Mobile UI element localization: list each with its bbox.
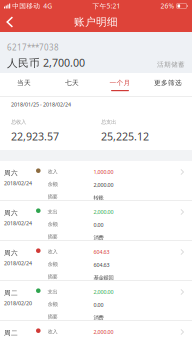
button[interactable]: 周六 — [0, 201, 192, 241]
staticText: 总支出 — [101, 119, 116, 125]
staticText: 余额 — [48, 261, 58, 267]
staticText: 2,000.00 — [94, 181, 114, 189]
button[interactable]: 一个月 — [96, 73, 144, 97]
staticText: 2018/02/24 — [4, 220, 32, 227]
staticText: 6217***7038 — [7, 42, 59, 53]
button[interactable]: 周六 — [0, 241, 192, 281]
button[interactable]: 七天 — [48, 73, 96, 97]
staticText: 2018/02/20 — [4, 300, 32, 307]
staticText: 25,225.12 — [101, 129, 149, 143]
staticText: 一个月 — [109, 79, 130, 87]
button[interactable]: 周六 — [0, 161, 192, 201]
staticText: 余额 — [48, 221, 58, 227]
staticText: 摘要 — [48, 313, 58, 320]
staticText: 2018/02/24 — [4, 260, 32, 267]
staticText: 收入 — [48, 248, 58, 255]
button[interactable]: 周二 — [0, 321, 192, 341]
staticText: 七天 — [65, 79, 79, 87]
staticText: 当天 — [17, 79, 31, 87]
staticText: 2018/01/25 - 2018/02/24 — [11, 101, 71, 108]
button[interactable]: 返回 — [0, 12, 23, 32]
staticText: 基金赎回 — [94, 275, 114, 281]
staticText: 2018/02/24 — [4, 180, 32, 187]
staticText: 2,000.00 — [94, 208, 114, 215]
staticText: 0.00 — [94, 301, 104, 309]
staticText: 摘要 — [48, 193, 58, 200]
staticText: 周二 — [4, 329, 18, 337]
staticText: 消费 — [94, 235, 104, 241]
staticText: 周六 — [4, 249, 18, 257]
button[interactable]: 当天 — [0, 73, 48, 97]
staticText: 1,000.00 — [94, 168, 114, 175]
staticText: 活期储蓄 — [157, 60, 185, 69]
staticText: 转账 — [94, 195, 104, 201]
staticText: 604.63 — [94, 261, 110, 269]
staticText: 周六 — [4, 169, 18, 177]
staticText: 消费 — [94, 315, 104, 321]
staticText: 2,000.00 — [94, 288, 114, 295]
staticText: 支出 — [48, 288, 58, 295]
staticText: 中国移动 — [12, 2, 40, 10]
button[interactable]: 周二 — [0, 281, 192, 321]
staticText: 周二 — [4, 289, 18, 297]
staticText: 总收入 — [11, 119, 26, 125]
staticText: 摘要 — [48, 233, 58, 240]
staticText: 更多筛选 — [154, 79, 182, 87]
staticText: 收入 — [48, 168, 58, 175]
staticText: 4G — [43, 2, 52, 10]
button[interactable]: 更多筛选 — [144, 73, 192, 97]
staticText: 余额 — [48, 181, 58, 187]
staticText: 0.00 — [94, 221, 104, 229]
staticText: 摘要 — [48, 273, 58, 280]
staticText: 周六 — [4, 209, 18, 217]
staticText: 支出 — [48, 208, 58, 215]
staticText: 26% — [161, 2, 175, 10]
staticText: 下午5:21 — [92, 2, 120, 10]
staticText: 22,923.57 — [11, 129, 59, 143]
staticText: 人民币 2,700.00 — [7, 56, 85, 70]
staticText: 账户明细 — [74, 15, 118, 28]
staticText: 604.63 — [94, 248, 110, 255]
staticText: 2,000.00 — [94, 328, 114, 335]
staticText: 收入 — [48, 328, 58, 335]
staticText: 余额 — [48, 301, 58, 307]
